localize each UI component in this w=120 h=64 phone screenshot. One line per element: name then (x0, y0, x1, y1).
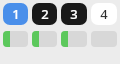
staticText: 1 (12, 5, 20, 23)
staticText: 4 (100, 5, 108, 23)
button[interactable]: 3 (61, 3, 87, 25)
button[interactable]: 4 (91, 3, 117, 25)
button[interactable]: 2 (32, 3, 57, 25)
staticText: 3 (70, 5, 78, 23)
button[interactable]: 1 (3, 3, 28, 25)
button[interactable]: Progress for 3 (61, 31, 87, 47)
button[interactable]: Progress for 2 (32, 31, 57, 47)
button[interactable]: Progress for 1 (3, 31, 28, 47)
staticText: 2 (41, 5, 49, 23)
